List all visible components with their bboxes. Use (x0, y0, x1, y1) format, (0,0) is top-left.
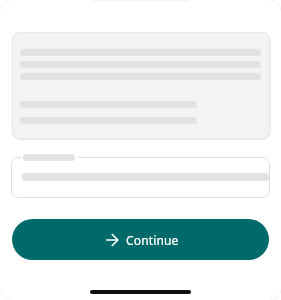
button[interactable] (11, 157, 270, 198)
button[interactable]: Continue (12, 219, 269, 260)
staticText: Continue (126, 232, 179, 248)
